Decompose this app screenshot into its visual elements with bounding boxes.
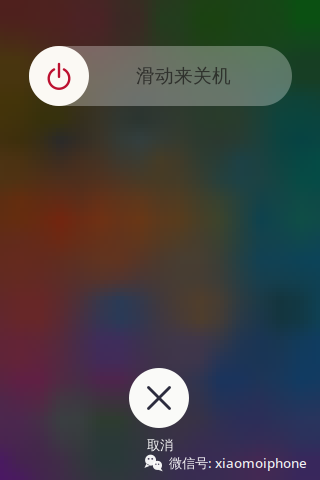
- staticText: 取消: [147, 437, 173, 453]
- staticText: 微信号: xiaomoiphone: [169, 454, 307, 472]
- button[interactable]: 滑动来关机: [29, 46, 292, 106]
- staticText: 滑动来关机: [136, 64, 231, 87]
- button[interactable]: Cancel: [129, 368, 189, 428]
